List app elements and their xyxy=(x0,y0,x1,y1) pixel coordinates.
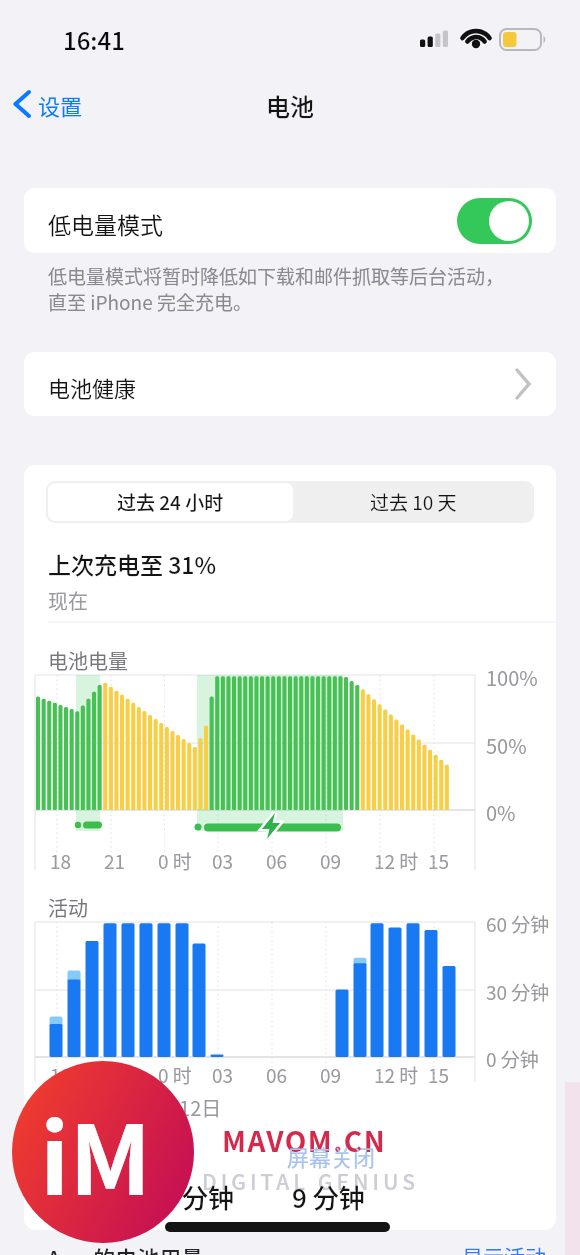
staticText: 21 xyxy=(104,847,126,875)
staticText: 60 分钟 xyxy=(486,910,550,938)
staticText: 12 时 xyxy=(374,847,419,875)
staticText: 显示活动 xyxy=(462,1241,546,1255)
staticText: 06 xyxy=(266,847,288,875)
staticText: 12 时 xyxy=(374,1061,419,1089)
staticText: 21 xyxy=(104,1061,126,1089)
staticText: 0 分钟 xyxy=(486,1045,539,1073)
staticText: DIGITAL GENIUS xyxy=(202,1166,419,1196)
button[interactable]: 过去 10 天 xyxy=(293,481,534,523)
staticText: 过去 10 天 xyxy=(370,488,457,516)
staticText: 15 xyxy=(428,847,450,875)
staticText: 低电量模式将暂时降低如下载和邮件抓取等后台活动， 直至 iPhone 完全充电。 xyxy=(48,262,505,315)
staticText: 低电量模式 xyxy=(48,207,163,240)
staticText: MAVOM.CN xyxy=(222,1120,387,1161)
staticText: 0 时 xyxy=(158,847,192,875)
button[interactable]: 设置 xyxy=(8,86,108,122)
staticText: 16:41 xyxy=(63,22,125,57)
staticText: 50% xyxy=(486,731,527,760)
staticText: 9月12日 xyxy=(148,1093,222,1122)
button[interactable] xyxy=(457,198,532,244)
staticText: 屏幕关闭 xyxy=(287,1140,376,1172)
staticText: 30 分钟 xyxy=(486,978,550,1006)
staticText: 0% xyxy=(486,798,516,827)
button[interactable]: 低电量模式 xyxy=(24,188,556,253)
staticText: App 的电池用量 xyxy=(47,1241,204,1255)
staticText: 06 xyxy=(266,1061,288,1089)
staticText: 03 xyxy=(212,1061,234,1089)
button[interactable]: 显示活动 xyxy=(450,1237,560,1255)
staticText: iM xyxy=(40,1084,152,1223)
staticText: 18 xyxy=(50,1061,72,1089)
staticText: 上次充电至 31% xyxy=(48,547,216,580)
staticText: 活动 xyxy=(48,893,88,922)
staticText: 电池电量 xyxy=(48,646,128,675)
staticText: 0 时 xyxy=(158,1061,192,1089)
button[interactable]: 电池健康 xyxy=(24,352,556,416)
staticText: 09 xyxy=(320,847,342,875)
staticText: 100% xyxy=(486,663,538,692)
staticText: 过去 24 小时 xyxy=(117,488,224,516)
button[interactable]: 过去 24 小时 xyxy=(48,483,293,521)
staticText: 电池健康 xyxy=(48,371,137,403)
staticText: 15 xyxy=(428,1061,450,1089)
staticText: 09 xyxy=(320,1061,342,1089)
staticText: 分钟 xyxy=(182,1178,235,1216)
staticText: 现在 xyxy=(48,586,88,615)
staticText: 9 分钟 xyxy=(292,1178,365,1216)
staticText: 03 xyxy=(212,847,234,875)
staticText: 设置 xyxy=(38,89,83,121)
staticText: 电池 xyxy=(266,88,314,123)
staticText: 18 xyxy=(50,847,72,875)
